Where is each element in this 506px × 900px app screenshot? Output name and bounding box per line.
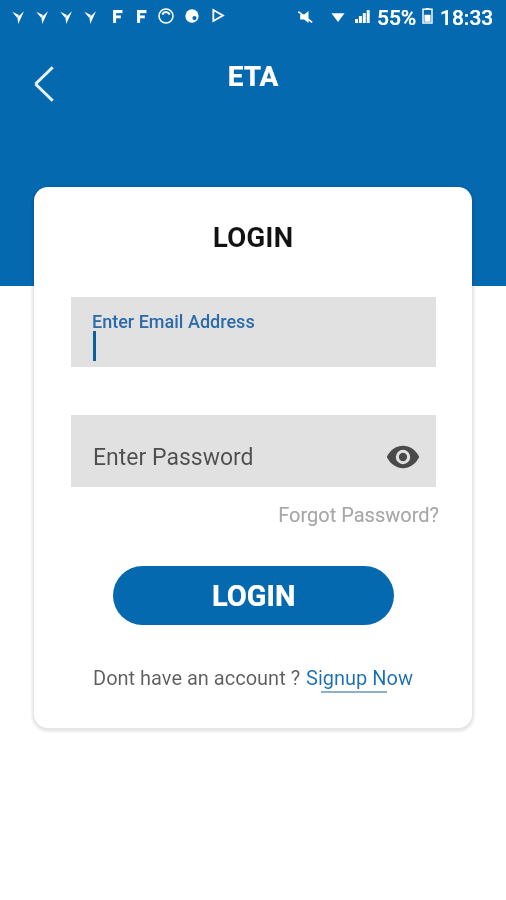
button[interactable]: Enter Password	[71, 415, 436, 487]
button[interactable]: Enter Email Address	[71, 297, 436, 367]
staticText: 55%	[377, 6, 417, 31]
staticText: LOGIN	[34, 221, 472, 254]
button[interactable]: Forgot Password?	[34, 503, 439, 526]
button[interactable]: Back	[22, 60, 70, 108]
button[interactable]: Signup Now	[306, 666, 413, 689]
staticText: 18:33	[440, 6, 494, 31]
button[interactable]: Show password	[383, 437, 423, 477]
button[interactable]: LOGIN	[113, 566, 394, 625]
staticText: LOGIN	[212, 579, 296, 613]
staticText: Signup Now	[306, 666, 413, 689]
staticText: ETA	[0, 60, 506, 93]
staticText: Dont have an account ?	[93, 666, 306, 689]
staticText: Enter Email Address	[92, 311, 255, 332]
staticText: Enter Password	[93, 444, 254, 471]
